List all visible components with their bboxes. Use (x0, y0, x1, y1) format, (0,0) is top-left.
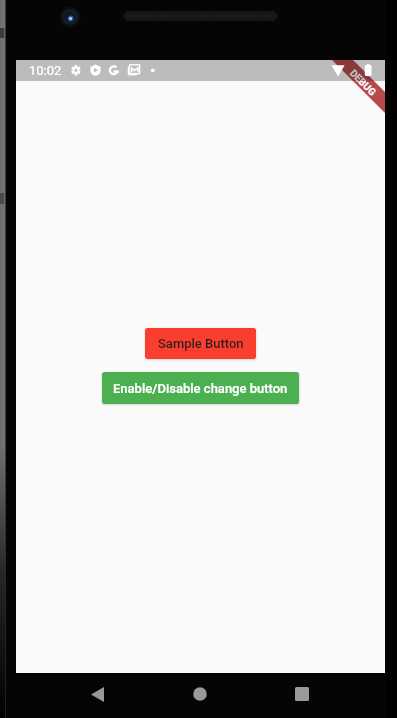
button[interactable]: Home (185, 679, 215, 709)
staticText: Sample Button (158, 336, 244, 351)
button[interactable]: Recent apps (287, 679, 317, 709)
button[interactable]: Enable/Disable change button (102, 372, 299, 404)
button[interactable]: Back (82, 679, 112, 709)
button[interactable]: Sample Button (145, 328, 256, 359)
staticText: Enable/Disable change button (113, 381, 288, 396)
staticText: DEBUG (347, 67, 378, 98)
staticText: 10:02 (29, 63, 62, 78)
